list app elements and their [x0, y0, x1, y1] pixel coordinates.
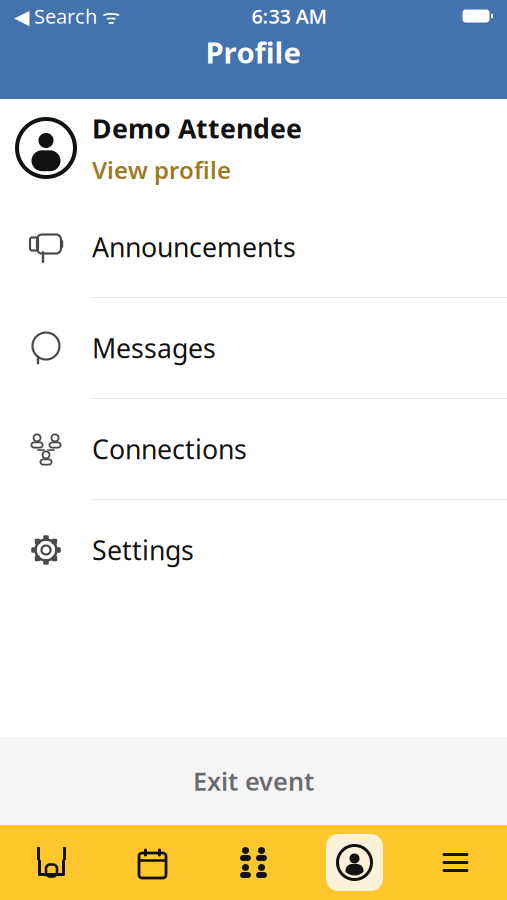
button[interactable]: Demo Attendee — [0, 99, 507, 197]
button[interactable]: Home — [1, 825, 102, 900]
button[interactable]: Announcements — [0, 197, 507, 297]
staticText: Exit event — [193, 764, 314, 798]
button[interactable]: Settings — [0, 500, 507, 600]
staticText: Announcements — [92, 229, 296, 265]
staticText: View profile — [92, 154, 231, 186]
staticText: Connections — [92, 431, 247, 467]
button[interactable]: Schedule — [102, 825, 203, 900]
staticText: Profile — [205, 32, 301, 71]
button[interactable]: Profile — [304, 825, 405, 900]
staticText: Demo Attendee — [92, 110, 302, 146]
staticText: ◀ Search ᯤ — [14, 3, 120, 29]
staticText: Messages — [92, 330, 216, 366]
button[interactable]: Exit event — [0, 737, 507, 825]
button[interactable]: Connections — [0, 399, 507, 499]
button[interactable]: Messages — [0, 298, 507, 398]
button[interactable]: More — [405, 825, 506, 900]
button[interactable]: Attendees — [203, 825, 304, 900]
staticText: 6:33 AM — [251, 3, 327, 29]
staticText: Settings — [92, 532, 194, 568]
